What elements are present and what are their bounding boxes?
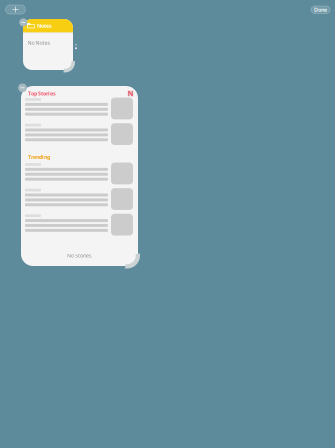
staticText: Done bbox=[314, 6, 327, 13]
staticText: No Notes bbox=[27, 39, 50, 46]
button[interactable]: Remove widget bbox=[19, 18, 27, 26]
button[interactable]: Add widget bbox=[5, 5, 25, 14]
button[interactable]: Remove widget bbox=[18, 83, 27, 92]
staticText: Top Stories bbox=[28, 90, 56, 97]
staticText: Trending bbox=[28, 153, 50, 161]
button[interactable]: Done bbox=[311, 6, 330, 13]
staticText: No Stories bbox=[67, 252, 92, 259]
staticText: Notes bbox=[37, 22, 52, 29]
